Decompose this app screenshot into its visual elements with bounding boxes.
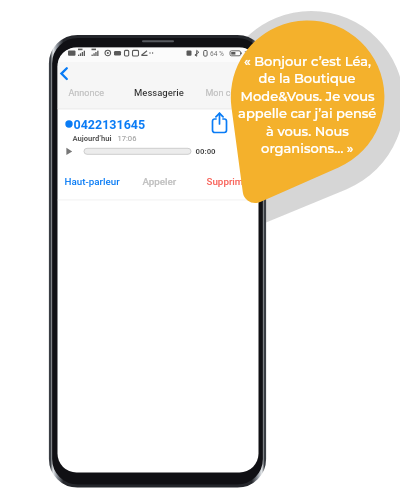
button[interactable]: Message vocal Mode&Vous [0, 0, 400, 496]
